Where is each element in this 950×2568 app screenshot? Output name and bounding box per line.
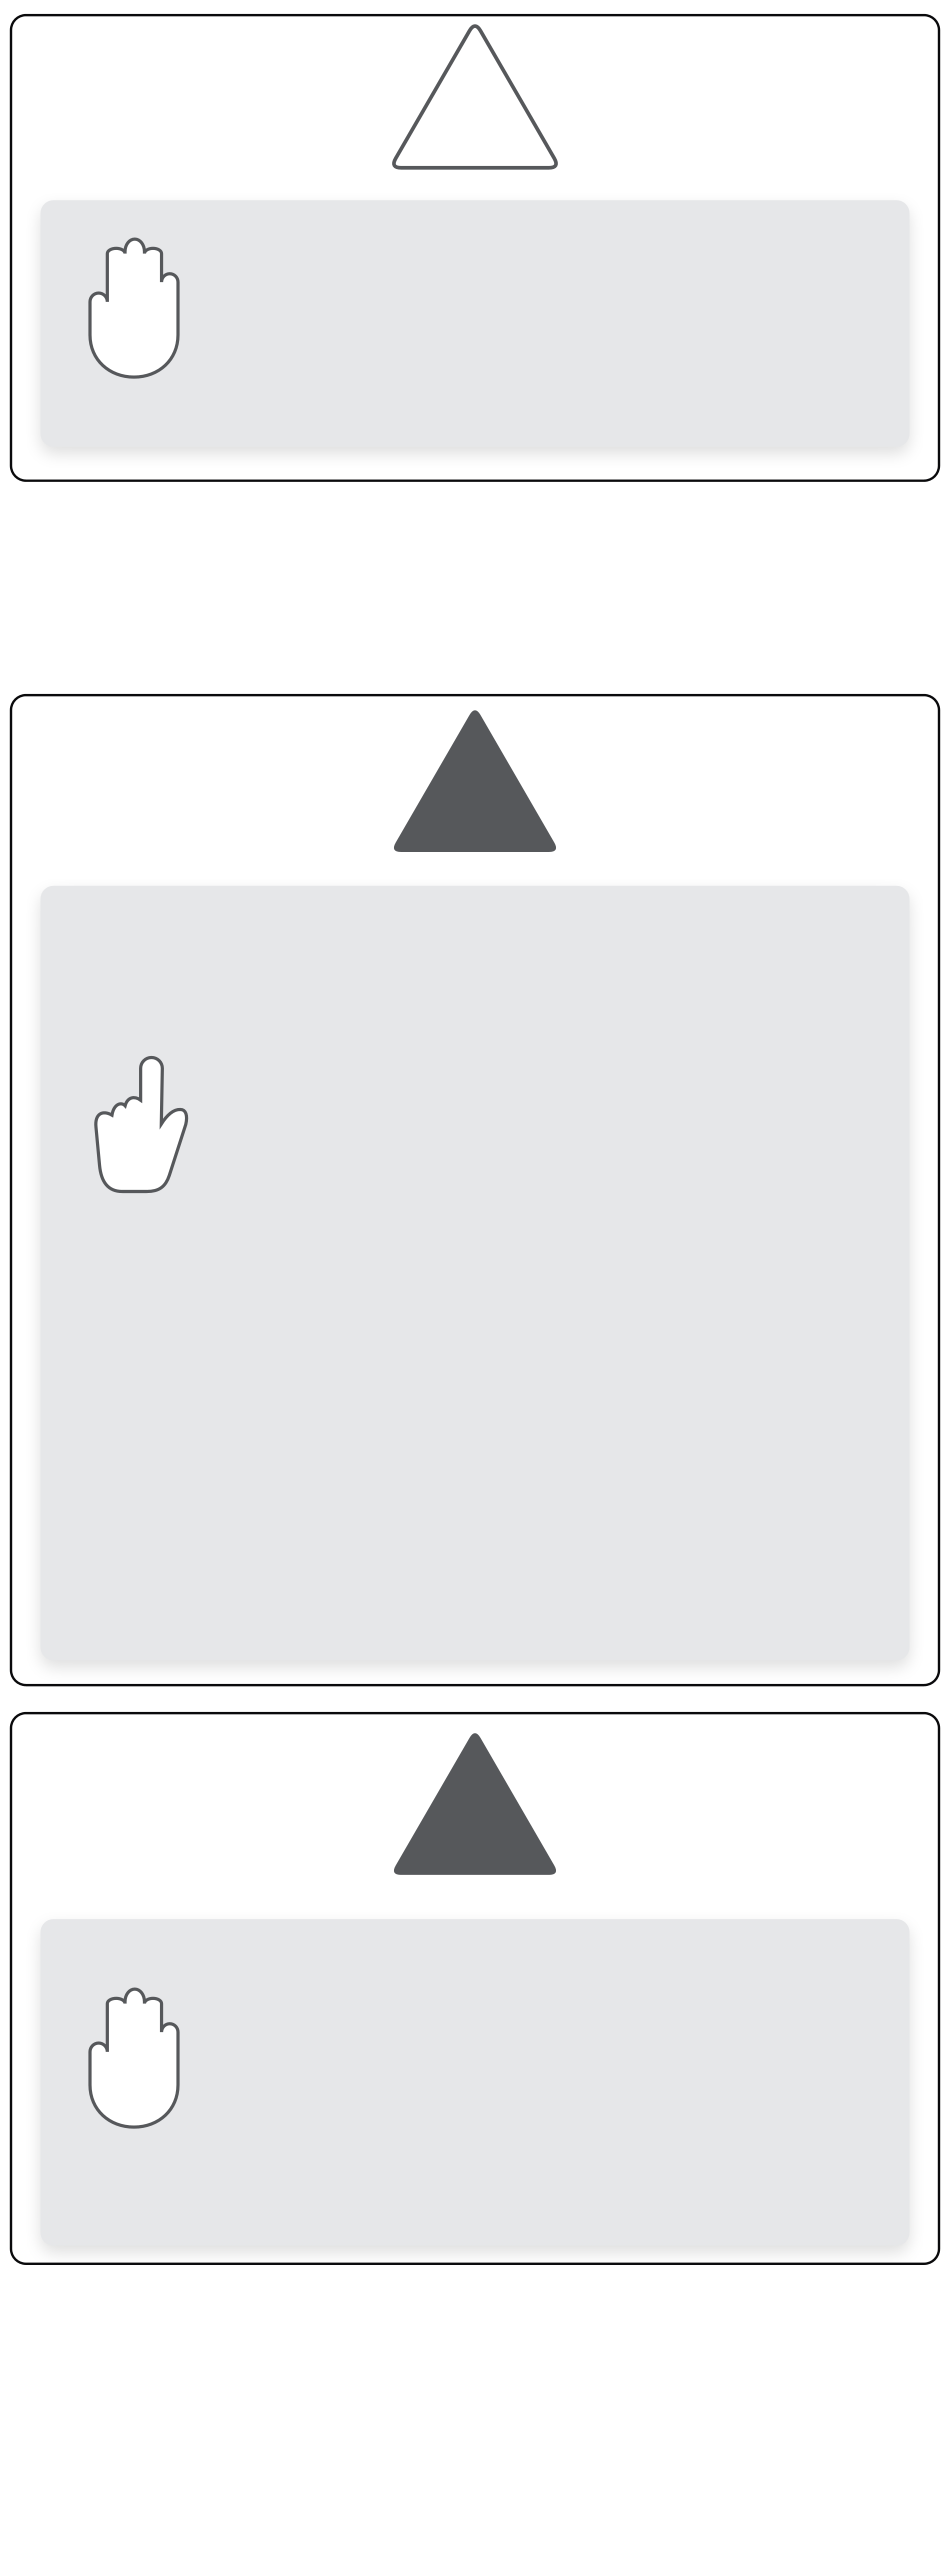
button[interactable]: Point up <box>11 695 939 1685</box>
button[interactable]: Stop <box>11 1713 939 2264</box>
button[interactable]: Stop <box>11 15 939 481</box>
